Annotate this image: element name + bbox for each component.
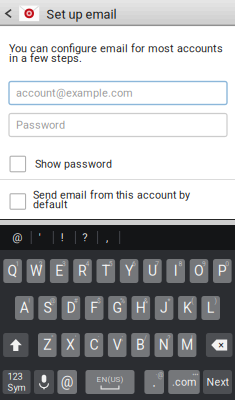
button[interactable]: Back xyxy=(0,0,17,26)
staticText: . xyxy=(152,374,156,390)
button[interactable]: # xyxy=(62,296,80,320)
staticText: # xyxy=(74,297,78,305)
staticText: P xyxy=(218,263,227,279)
button[interactable]: 8 xyxy=(166,259,185,283)
staticText: EN(US) xyxy=(96,375,123,384)
button[interactable]: Voice input xyxy=(34,370,54,394)
staticText: E xyxy=(55,263,63,279)
staticText: 2 xyxy=(39,260,43,268)
staticText: ) xyxy=(215,297,217,305)
staticText: * xyxy=(167,297,170,305)
staticText: $ xyxy=(97,297,101,305)
button[interactable]: ' xyxy=(61,333,80,357)
button[interactable]: Password xyxy=(9,113,227,136)
button[interactable]: Next xyxy=(203,370,232,394)
button[interactable]: ·@ xyxy=(144,370,164,394)
button[interactable]: 9 xyxy=(190,259,208,283)
staticText: K xyxy=(183,300,192,316)
staticText: ? xyxy=(82,231,87,244)
button[interactable]: @ xyxy=(7,225,28,250)
staticText: ? xyxy=(167,334,170,342)
button[interactable]: @ xyxy=(57,370,77,394)
button[interactable]: ; xyxy=(108,333,126,357)
staticText: U xyxy=(148,263,157,279)
button[interactable]: ! xyxy=(52,225,73,250)
staticText: 8 xyxy=(179,260,183,268)
button[interactable]: ! xyxy=(15,296,34,320)
button[interactable]: / xyxy=(131,333,150,357)
staticText: V xyxy=(113,337,122,353)
button[interactable]: Space xyxy=(85,370,134,394)
button[interactable]: ! xyxy=(178,333,196,357)
staticText: @ xyxy=(61,374,74,390)
staticText: R xyxy=(78,263,87,279)
button[interactable]: & xyxy=(131,296,150,320)
staticText: / xyxy=(144,334,147,342)
staticText: S xyxy=(44,300,52,316)
staticText: W xyxy=(30,263,42,279)
staticText: Y xyxy=(125,263,133,279)
staticText: 6 xyxy=(132,260,136,268)
staticText: Password xyxy=(16,119,65,131)
button[interactable]: ? xyxy=(154,333,173,357)
staticText: ( xyxy=(191,297,193,305)
button[interactable]: 1 xyxy=(3,259,22,283)
button[interactable]: Send email from this account by default xyxy=(0,180,235,220)
button[interactable]: 123 Sym xyxy=(3,370,31,394)
staticText: N xyxy=(159,337,169,353)
staticText: 9 xyxy=(202,260,206,268)
staticText: Show password xyxy=(35,158,112,170)
staticText: ' xyxy=(75,334,76,342)
staticText: A xyxy=(20,300,29,316)
staticText: ' xyxy=(39,231,41,244)
staticText: ·@ xyxy=(156,371,164,379)
button[interactable]: Delete xyxy=(206,333,232,357)
staticText: H xyxy=(136,300,146,316)
button[interactable]: @ xyxy=(38,296,57,320)
staticText: ; xyxy=(122,334,123,342)
staticText: X xyxy=(66,337,75,353)
staticText: You can configure email for most account… xyxy=(9,42,223,65)
button[interactable]: account@example.com xyxy=(9,81,227,104)
staticText: F xyxy=(90,300,98,316)
staticText: Set up email xyxy=(46,7,116,22)
staticText: T xyxy=(102,263,110,279)
staticText: 0 xyxy=(225,260,229,268)
staticText: " xyxy=(51,334,53,342)
staticText: @ xyxy=(12,231,22,244)
button[interactable]: * xyxy=(155,296,173,320)
staticText: ••• xyxy=(192,371,198,379)
staticText: % xyxy=(120,297,125,305)
staticText: M xyxy=(181,337,193,353)
button[interactable]: Shift xyxy=(3,333,28,357)
button[interactable]: Show password xyxy=(0,147,235,179)
button[interactable]: " xyxy=(38,333,57,357)
button[interactable]: ••• xyxy=(168,370,200,394)
button[interactable]: ) xyxy=(201,296,220,320)
staticText: D xyxy=(66,300,75,316)
button[interactable]: 5 xyxy=(96,259,115,283)
button[interactable]: 6 xyxy=(120,259,138,283)
staticText: .com xyxy=(172,376,196,388)
button[interactable]: ? xyxy=(74,225,95,250)
staticText: 3 xyxy=(62,260,66,268)
button[interactable]: 0 xyxy=(213,259,232,283)
button[interactable]: 3 xyxy=(50,259,68,283)
button[interactable]: ( xyxy=(178,296,197,320)
staticText: 123 Sym xyxy=(8,371,26,393)
staticText: Z xyxy=(43,337,51,353)
button[interactable]: 4 xyxy=(73,259,92,283)
staticText: & xyxy=(144,297,148,305)
button[interactable]: $ xyxy=(85,296,103,320)
button[interactable]: ' xyxy=(29,225,50,250)
button[interactable]: : xyxy=(85,333,103,357)
staticText: ! xyxy=(28,297,30,305)
button[interactable]: % xyxy=(108,296,127,320)
staticText: account@example.com xyxy=(16,87,133,99)
staticText: O xyxy=(194,263,204,279)
button[interactable]: , xyxy=(97,225,118,250)
button[interactable]: 2 xyxy=(27,259,45,283)
staticText: 1 xyxy=(15,260,19,268)
staticText: ! xyxy=(191,334,193,342)
button[interactable]: 7 xyxy=(143,259,162,283)
